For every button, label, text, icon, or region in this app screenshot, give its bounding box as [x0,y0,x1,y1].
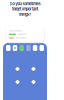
staticText: forget important [12,7,38,11]
staticText: Do you sometimes [9,1,40,6]
staticText: things? [19,12,31,17]
